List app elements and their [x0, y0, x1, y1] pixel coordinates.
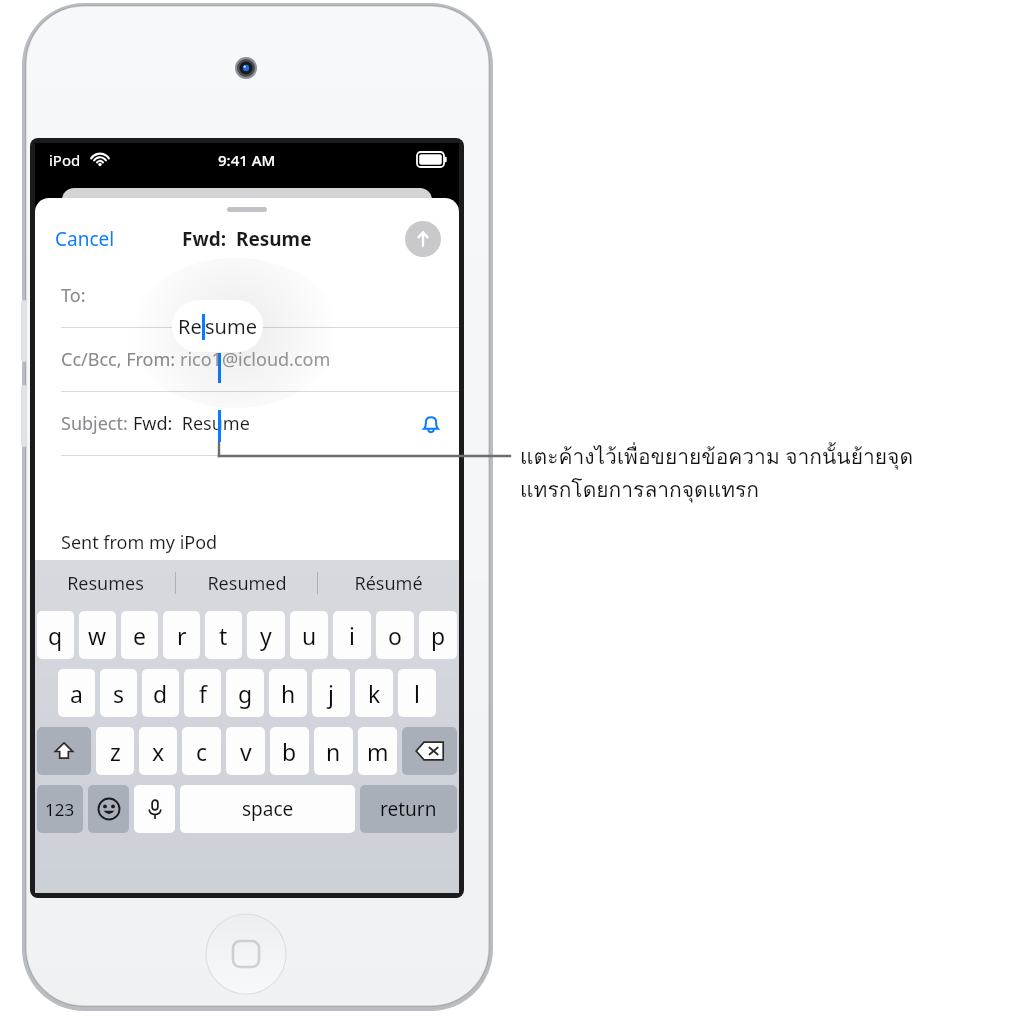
button[interactable]: i [333, 611, 371, 659]
button[interactable]: Notify me [417, 410, 445, 438]
staticText: s [113, 678, 125, 709]
button[interactable]: Emoji [88, 785, 129, 833]
staticText: b [282, 736, 297, 767]
button[interactable]: Delete [402, 727, 457, 775]
staticText: i [349, 620, 355, 651]
staticText: y [260, 620, 272, 651]
staticText: f [199, 678, 207, 709]
button[interactable]: space [180, 785, 355, 833]
staticText: 9:41 AM [218, 150, 276, 170]
staticText: r [177, 620, 187, 651]
staticText: q [48, 620, 63, 651]
staticText: sume [205, 313, 257, 340]
staticText: m [367, 736, 389, 767]
staticText: d [153, 678, 168, 709]
button[interactable]: y [247, 611, 285, 659]
staticText: h [281, 678, 296, 709]
button[interactable]: w [79, 611, 116, 659]
staticText: z [110, 736, 121, 767]
staticText: k [368, 678, 381, 709]
staticText: a [70, 678, 83, 709]
staticText: e [133, 620, 146, 651]
staticText: t [219, 620, 228, 651]
button[interactable]: e [121, 611, 158, 659]
button[interactable]: z [96, 727, 134, 775]
button[interactable]: o [376, 611, 414, 659]
button[interactable]: Résumé [318, 560, 459, 606]
staticText: w [88, 620, 107, 651]
staticText: n [326, 736, 341, 767]
button[interactable]: Shift [37, 727, 91, 775]
staticText: v [240, 736, 252, 767]
button[interactable]: b [270, 727, 309, 775]
staticText: p [431, 620, 446, 651]
staticText: แทรกโดยการลากจุดแทรก [520, 473, 760, 506]
staticText: g [238, 678, 253, 709]
staticText: j [328, 678, 334, 709]
button[interactable]: t [205, 611, 242, 659]
staticText: Fwd: Resume [133, 411, 250, 436]
staticText: Fwd: Resume [182, 226, 312, 252]
button[interactable]: return [360, 785, 457, 833]
button[interactable]: u [290, 611, 328, 659]
button[interactable]: p [419, 611, 457, 659]
button[interactable]: r [163, 611, 200, 659]
button[interactable]: j [312, 669, 350, 717]
staticText: return [380, 796, 437, 822]
button[interactable]: h [269, 669, 307, 717]
staticText: 123 [45, 798, 75, 821]
button[interactable]: f [184, 669, 221, 717]
staticText: c [196, 736, 208, 767]
button[interactable]: Subject: [35, 392, 459, 455]
staticText: space [242, 796, 294, 822]
button[interactable]: m [358, 727, 397, 775]
staticText: Re [178, 313, 202, 340]
staticText: u [302, 620, 317, 651]
staticText: o [388, 620, 402, 651]
button[interactable]: n [314, 727, 353, 775]
staticText: iPod [49, 150, 81, 170]
button[interactable]: Cc/Bcc, From: [35, 328, 459, 391]
button[interactable]: v [226, 727, 265, 775]
staticText: Sent from my iPod [61, 530, 218, 555]
button[interactable]: Resumed [176, 560, 317, 606]
button[interactable]: a [58, 669, 95, 717]
button[interactable]: x [139, 727, 177, 775]
button[interactable]: k [355, 669, 393, 717]
staticText: rico1@icloud.com [180, 347, 331, 372]
button[interactable]: g [226, 669, 264, 717]
staticText: Subject: [61, 411, 133, 436]
button[interactable]: c [182, 727, 221, 775]
button[interactable]: Dictation [134, 785, 175, 833]
staticText: แตะค้างไว้เพื่อขยายข้อความ จากนั้นย้ายจุ… [520, 440, 914, 473]
button[interactable]: Cancel [49, 220, 121, 258]
staticText: Resumed [207, 571, 287, 596]
staticText: Résumé [354, 571, 423, 596]
staticText: x [152, 736, 165, 767]
staticText: To: [61, 283, 86, 308]
button[interactable]: q [37, 611, 74, 659]
button[interactable]: Resumes [35, 560, 175, 606]
button[interactable]: s [100, 669, 137, 717]
button[interactable]: d [142, 669, 179, 717]
staticText: Resumes [67, 571, 144, 596]
staticText: Cancel [55, 226, 115, 252]
staticText: Cc/Bcc, From: [61, 347, 180, 372]
button[interactable]: l [398, 669, 436, 717]
button[interactable]: 123 [37, 785, 83, 833]
button[interactable]: Send [405, 221, 441, 257]
staticText: l [414, 678, 420, 709]
button[interactable]: To: [35, 264, 459, 327]
